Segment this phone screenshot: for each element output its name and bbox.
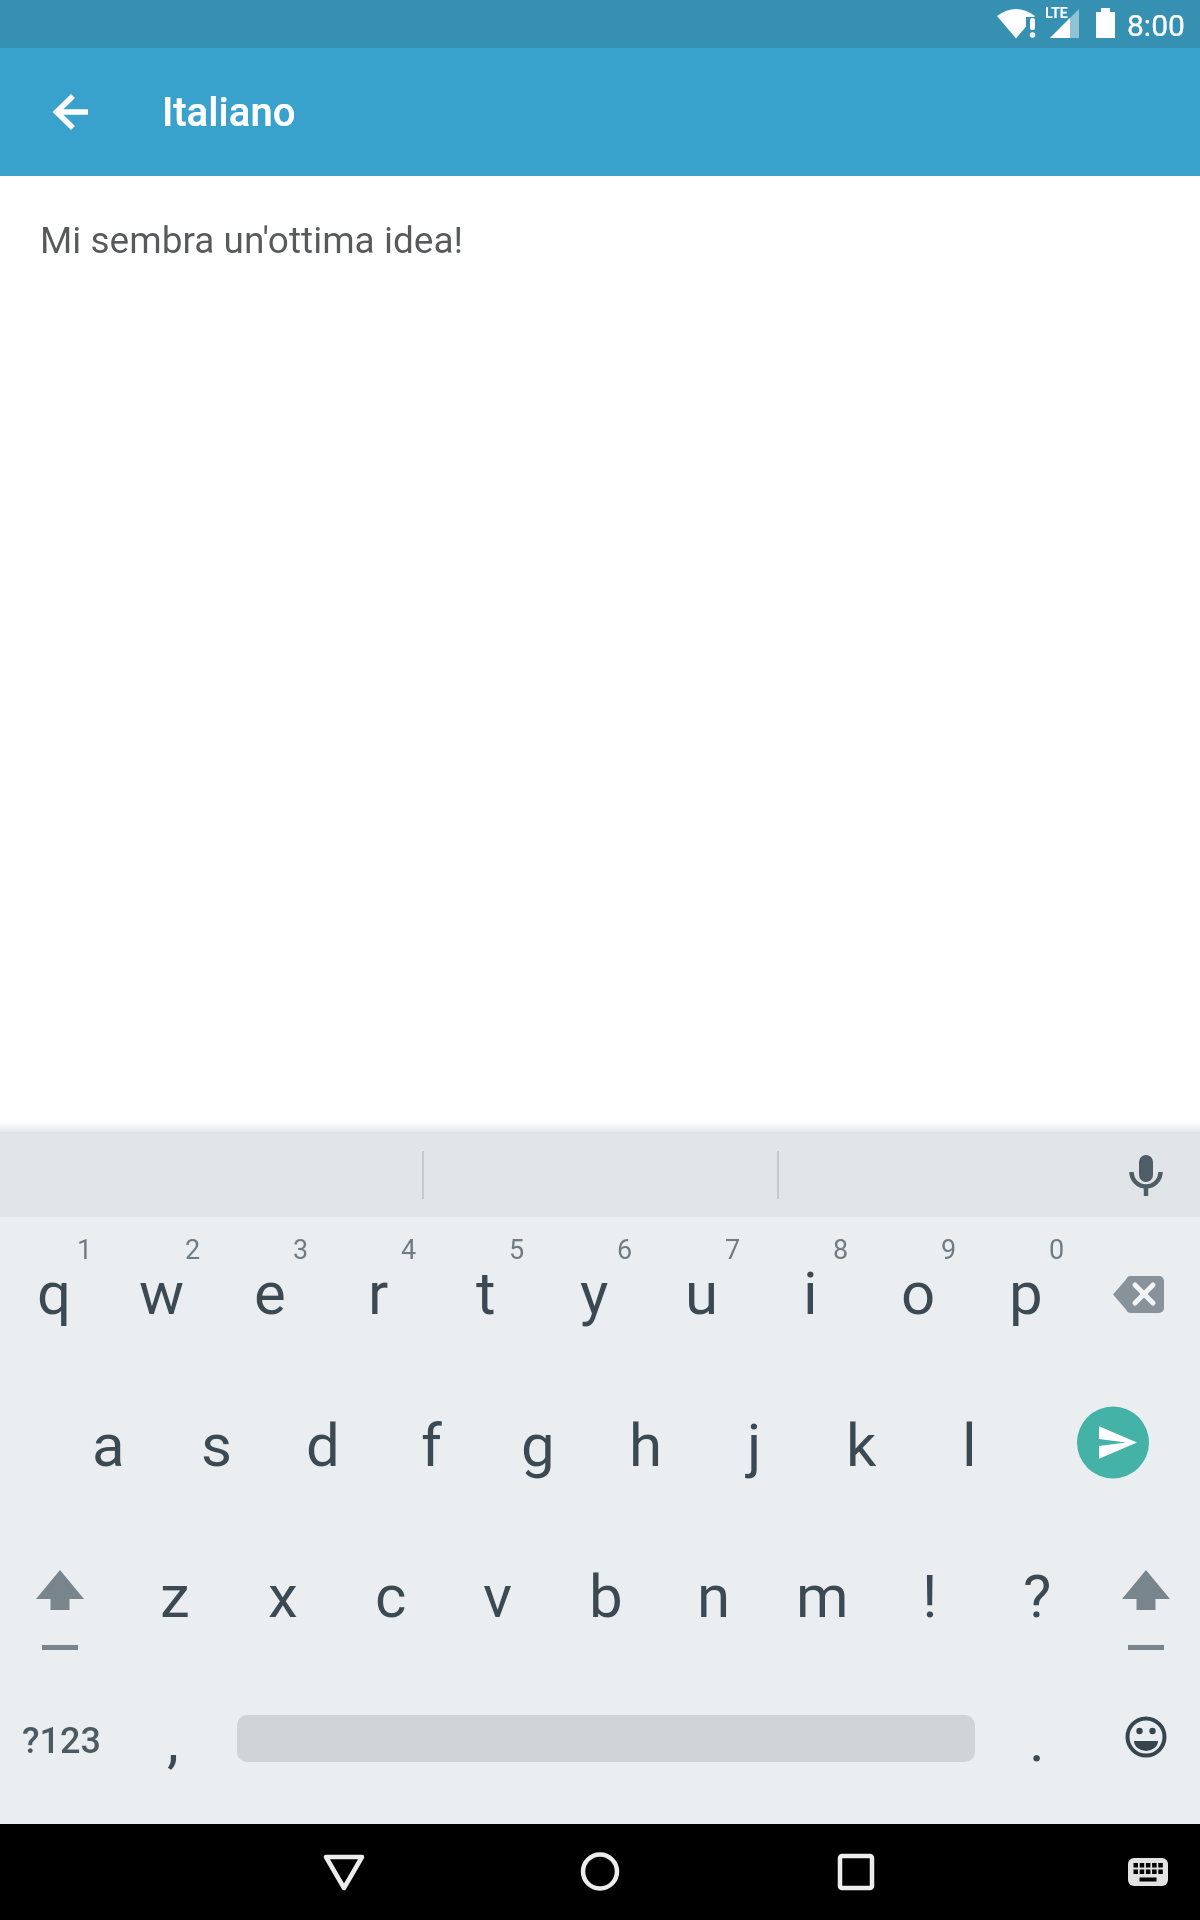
staticText: g xyxy=(521,1410,555,1480)
staticText: r xyxy=(368,1258,389,1328)
button[interactable]: t xyxy=(434,1217,538,1369)
button[interactable]: h xyxy=(594,1369,698,1521)
button[interactable] xyxy=(1096,1690,1196,1790)
staticText: u xyxy=(685,1258,719,1328)
button[interactable] xyxy=(1100,1134,1192,1216)
button[interactable]: ? xyxy=(985,1520,1089,1672)
staticText: h xyxy=(629,1410,663,1480)
button[interactable]: n xyxy=(662,1520,766,1672)
staticText: x xyxy=(268,1561,298,1631)
staticText: 7 xyxy=(725,1234,741,1266)
staticText: 8 xyxy=(833,1234,849,1266)
staticText: s xyxy=(201,1410,232,1480)
button[interactable] xyxy=(1091,1520,1200,1672)
button[interactable]: j xyxy=(702,1369,806,1521)
staticText: n xyxy=(697,1561,731,1631)
button[interactable] xyxy=(1055,1384,1173,1502)
button[interactable]: , xyxy=(121,1664,225,1816)
button[interactable] xyxy=(806,1824,906,1920)
button[interactable]: a xyxy=(56,1369,160,1521)
staticText: f xyxy=(421,1410,442,1480)
staticText: LTE xyxy=(1045,5,1068,21)
staticText: a xyxy=(92,1410,125,1480)
button[interactable]: c xyxy=(339,1520,443,1672)
staticText: t xyxy=(476,1258,496,1328)
button[interactable]: m xyxy=(770,1520,874,1672)
staticText: 3 xyxy=(293,1234,309,1266)
button[interactable]: ?123 xyxy=(1,1665,121,1817)
staticText: q xyxy=(37,1258,72,1328)
button[interactable]: o xyxy=(866,1217,970,1369)
staticText: w xyxy=(139,1258,185,1328)
staticText: , xyxy=(167,1705,179,1775)
button[interactable]: z xyxy=(123,1520,227,1672)
button[interactable] xyxy=(1108,1834,1188,1910)
button[interactable]: f xyxy=(379,1369,483,1521)
staticText: z xyxy=(160,1561,190,1631)
staticText: 6 xyxy=(617,1234,633,1266)
button[interactable] xyxy=(22,64,118,160)
staticText: k xyxy=(846,1410,877,1480)
button[interactable]: g xyxy=(486,1369,590,1521)
button[interactable]: b xyxy=(554,1520,658,1672)
button[interactable]: l xyxy=(917,1369,1021,1521)
staticText: p xyxy=(1009,1258,1043,1328)
staticText: 1 xyxy=(77,1234,93,1266)
staticText: b xyxy=(589,1561,623,1631)
staticText: ! xyxy=(922,1561,938,1631)
staticText: m xyxy=(796,1561,849,1631)
staticText: . xyxy=(1029,1705,1045,1775)
staticText: c xyxy=(375,1561,407,1631)
staticText: ?123 xyxy=(22,1720,101,1762)
button[interactable]: q xyxy=(2,1217,106,1369)
staticText: i xyxy=(803,1258,818,1328)
button[interactable]: s xyxy=(164,1369,268,1521)
staticText: l xyxy=(962,1410,977,1480)
staticText: j xyxy=(747,1410,762,1480)
staticText: Italiano xyxy=(162,89,296,136)
staticText: e xyxy=(254,1258,286,1328)
button[interactable]: i xyxy=(758,1217,862,1369)
staticText: 0 xyxy=(1049,1234,1065,1266)
staticText: v xyxy=(483,1561,513,1631)
button[interactable]: v xyxy=(446,1520,550,1672)
button[interactable]: ! xyxy=(878,1520,982,1672)
button[interactable] xyxy=(550,1824,650,1920)
button[interactable]: w xyxy=(110,1217,214,1369)
staticText: o xyxy=(901,1258,936,1328)
button[interactable]: k xyxy=(809,1369,913,1521)
button[interactable]: u xyxy=(650,1217,754,1369)
staticText: d xyxy=(306,1410,340,1480)
button[interactable] xyxy=(1086,1217,1200,1369)
button[interactable]: p xyxy=(974,1217,1078,1369)
button[interactable] xyxy=(294,1824,394,1920)
button[interactable] xyxy=(5,1520,115,1672)
button[interactable]: e xyxy=(218,1217,322,1369)
button[interactable]: d xyxy=(271,1369,375,1521)
button[interactable]: . xyxy=(985,1664,1089,1816)
staticText: y xyxy=(580,1258,609,1328)
staticText: 8:00 xyxy=(1127,8,1185,43)
staticText: Mi sembra un'ottima idea! xyxy=(40,219,464,262)
button[interactable]: r xyxy=(326,1217,430,1369)
staticText: 4 xyxy=(401,1234,417,1266)
staticText: 9 xyxy=(941,1234,957,1266)
staticText: 2 xyxy=(185,1234,201,1266)
button[interactable]: x xyxy=(231,1520,335,1672)
staticText: ? xyxy=(1023,1561,1052,1631)
staticText: 5 xyxy=(509,1234,525,1266)
button[interactable]: y xyxy=(542,1217,646,1369)
